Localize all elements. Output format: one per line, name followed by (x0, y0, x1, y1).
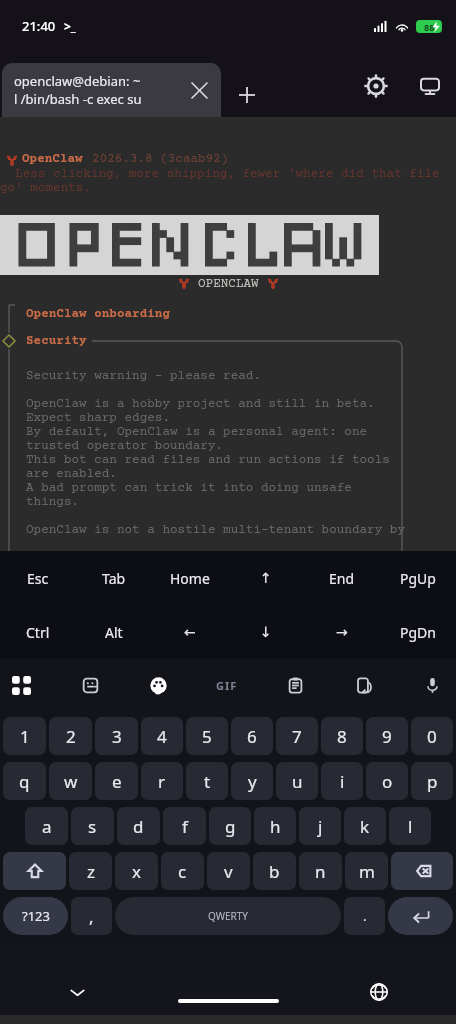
staticText: m (359, 860, 375, 883)
staticText: b (269, 860, 280, 883)
button[interactable]: Settings (354, 64, 398, 108)
button[interactable]: openclaw@debian: ~ (2, 63, 221, 117)
staticText: o (382, 770, 393, 793)
button[interactable]: p (411, 762, 453, 800)
staticText: OpenClaw (22, 152, 83, 166)
button[interactable]: 1 (3, 717, 46, 755)
button[interactable]: l (389, 807, 431, 845)
button[interactable]: y (231, 762, 273, 800)
button[interactable]: Clipboard (273, 663, 317, 707)
button[interactable]: Themes (136, 663, 180, 707)
staticText: a (42, 815, 52, 838)
staticText: >_ (64, 18, 76, 34)
button[interactable]: Files (342, 663, 386, 707)
button[interactable]: 7 (276, 717, 318, 755)
button[interactable]: t (186, 762, 228, 800)
button[interactable]: a (25, 807, 68, 845)
staticText: d (133, 815, 144, 838)
staticText: e (112, 770, 122, 793)
button[interactable]: Esc (0, 551, 76, 605)
button[interactable]: 4 (141, 717, 183, 755)
button[interactable]: Apps (0, 663, 43, 707)
staticText: ↓ (260, 624, 272, 640)
staticText: Ctrl (26, 623, 50, 642)
staticText: y (248, 770, 257, 793)
button[interactable]: 8 (321, 717, 363, 755)
staticText: 88 (424, 21, 435, 33)
staticText: 6 (247, 725, 257, 748)
button[interactable]: ← (152, 605, 228, 659)
button[interactable]: z (69, 852, 112, 890)
staticText: z (87, 860, 95, 883)
button[interactable]: k (344, 807, 386, 845)
staticText: g (225, 815, 236, 838)
button[interactable]: → (304, 605, 380, 659)
button[interactable]: 0 (411, 717, 453, 755)
button[interactable]: q (3, 762, 46, 800)
button[interactable]: Close tab (177, 68, 221, 112)
staticText: ?123 (22, 907, 50, 925)
button[interactable]: Backspace (391, 852, 453, 890)
button[interactable]: v (207, 852, 250, 890)
staticText: QWERTY (208, 909, 249, 923)
button[interactable]: c (161, 852, 204, 890)
button[interactable]: n (299, 852, 342, 890)
staticText: End (329, 569, 355, 588)
staticText: openclaw@debian: ~ (14, 72, 141, 90)
button[interactable]: r (141, 762, 183, 800)
button[interactable]: o (366, 762, 408, 800)
button[interactable]: Ctrl (0, 605, 76, 659)
button[interactable]: Tab (76, 551, 152, 605)
button[interactable]: QWERTY (115, 897, 341, 935)
button[interactable]: Stickers (68, 663, 112, 707)
button[interactable]: m (345, 852, 388, 890)
button[interactable]: i (321, 762, 363, 800)
button[interactable]: ?123 (3, 897, 68, 935)
button[interactable]: s (71, 807, 114, 845)
button[interactable]: Home (152, 551, 228, 605)
button[interactable]: Shift (3, 852, 66, 890)
button[interactable]: u (276, 762, 318, 800)
button[interactable]: g (209, 807, 251, 845)
button[interactable]: Display (408, 64, 452, 108)
staticText: f (182, 815, 188, 838)
button[interactable]: h (254, 807, 296, 845)
button[interactable]: PgDn (380, 605, 456, 659)
button[interactable]: GIF (205, 663, 249, 707)
staticText: OPENCLAW (198, 277, 259, 291)
button[interactable]: End (304, 551, 380, 605)
button[interactable]: d (117, 807, 160, 845)
staticText: 1 (20, 725, 30, 748)
staticText: 5 (202, 725, 212, 748)
button[interactable]: 2 (49, 717, 92, 755)
button[interactable]: 3 (95, 717, 138, 755)
button[interactable]: Hide keyboard (57, 972, 97, 1012)
button[interactable]: ↑ (228, 551, 304, 605)
staticText: j (318, 815, 323, 838)
button[interactable]: e (95, 762, 138, 800)
button[interactable]: Change language (359, 972, 399, 1012)
staticText: OpenClaw onboarding (26, 307, 171, 321)
staticText: 21:40 (22, 17, 56, 35)
button[interactable]: , (71, 897, 112, 935)
button[interactable]: b (253, 852, 296, 890)
button[interactable]: 6 (231, 717, 273, 755)
staticText: l /bin/bash -c exec su (14, 90, 142, 108)
button[interactable]: New tab (225, 73, 269, 117)
staticText: 8 (337, 725, 347, 748)
button[interactable]: f (163, 807, 206, 845)
button[interactable]: 5 (186, 717, 228, 755)
button[interactable]: Alt (76, 605, 152, 659)
staticText: s (88, 815, 97, 838)
button[interactable]: 9 (366, 717, 408, 755)
button[interactable]: j (299, 807, 341, 845)
staticText: 3 (112, 725, 122, 748)
button[interactable]: ↓ (228, 605, 304, 659)
button[interactable]: w (49, 762, 92, 800)
button[interactable]: PgUp (380, 551, 456, 605)
button[interactable]: Voice input (410, 663, 454, 707)
button[interactable]: . (344, 897, 385, 935)
button[interactable]: x (115, 852, 158, 890)
staticText: , (89, 905, 94, 928)
button[interactable]: Enter (388, 897, 453, 935)
